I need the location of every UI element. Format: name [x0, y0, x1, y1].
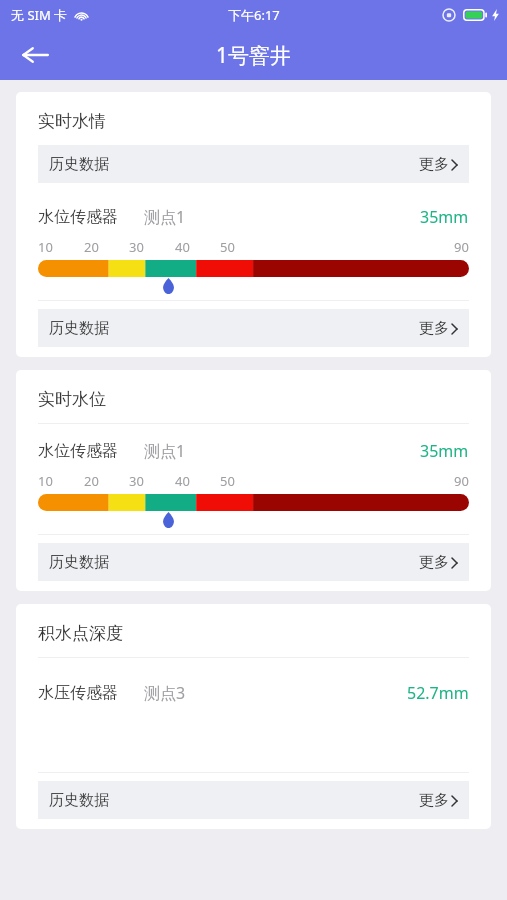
staticText: 30 — [129, 238, 144, 256]
staticText: 30 — [129, 472, 144, 490]
staticText: 下午6:17 — [228, 6, 280, 24]
staticText: 测点1 — [144, 206, 186, 228]
staticText: 1号窨井 — [216, 41, 292, 70]
staticText: 20 — [84, 238, 99, 256]
staticText: 更多 — [419, 319, 449, 338]
button[interactable]: 水位传感器 — [38, 196, 469, 238]
staticText: 90 — [454, 238, 469, 256]
staticText: 历史数据 — [49, 791, 109, 810]
staticText: 35mm — [420, 206, 469, 228]
button[interactable]: 历史数据 — [38, 781, 469, 819]
staticText: 无 SIM 卡 — [11, 6, 68, 24]
staticText: 实时水情 — [38, 111, 106, 132]
staticText: 历史数据 — [49, 553, 109, 572]
staticText: 实时水位 — [38, 389, 106, 410]
staticText: 历史数据 — [49, 319, 109, 338]
staticText: 积水点深度 — [38, 623, 123, 644]
staticText: 50 — [220, 238, 235, 256]
staticText: 20 — [84, 472, 99, 490]
staticText: 更多 — [419, 553, 449, 572]
staticText: 历史数据 — [49, 155, 109, 174]
staticText: 50 — [220, 472, 235, 490]
button[interactable]: Back — [12, 32, 58, 78]
staticText: 90 — [454, 472, 469, 490]
staticText: 40 — [175, 238, 190, 256]
button[interactable]: 水压传感器 — [38, 672, 469, 714]
button[interactable]: 历史数据 — [38, 543, 469, 581]
staticText: 水位传感器 — [38, 441, 118, 461]
staticText: 更多 — [419, 155, 449, 174]
staticText: 测点3 — [144, 682, 186, 704]
button[interactable]: 历史数据 — [38, 145, 469, 183]
staticText: 10 — [38, 472, 53, 490]
staticText: 水位传感器 — [38, 207, 118, 227]
staticText: 52.7mm — [407, 682, 469, 704]
staticText: 更多 — [419, 791, 449, 810]
button[interactable]: 历史数据 — [38, 309, 469, 347]
staticText: 10 — [38, 238, 53, 256]
staticText: 40 — [175, 472, 190, 490]
staticText: 35mm — [420, 440, 469, 462]
staticText: 测点1 — [144, 440, 186, 462]
staticText: 水压传感器 — [38, 683, 118, 703]
button[interactable]: 水位传感器 — [38, 430, 469, 472]
